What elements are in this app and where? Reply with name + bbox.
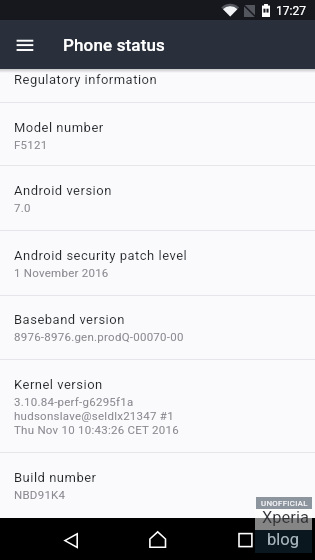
staticText: 7.0 — [14, 201, 31, 214]
staticText: 8976-8976.gen.prodQ-00070-00 — [14, 330, 184, 343]
staticText: Xperia — [262, 508, 309, 527]
other: Wi-Fi — [0, 0, 315, 20]
staticText: Model number — [14, 120, 104, 135]
staticText: Regulatory information — [14, 72, 158, 87]
staticText: 3.10.84-perf-g6295f1a — [14, 395, 134, 408]
button[interactable]: Android security patch level — [0, 231, 315, 295]
staticText: UNOFFICIAL — [261, 499, 308, 508]
staticText: Baseband version — [14, 312, 125, 327]
button[interactable]: Kernel version — [0, 360, 315, 453]
staticText: hudsonslave@seldlx21347 #1 — [14, 409, 174, 422]
button[interactable]: Regulatory information — [0, 55, 315, 103]
staticText: Thu Nov 10 10:43:26 CET 2016 — [14, 423, 179, 436]
button[interactable]: Android version — [0, 166, 315, 231]
button[interactable]: Back — [51, 519, 91, 559]
button[interactable]: Home — [138, 519, 178, 559]
other: No SIM card — [244, 5, 255, 17]
staticText: 1 November 2016 — [14, 266, 109, 279]
staticText: Build number — [14, 470, 97, 485]
staticText: Phone status — [63, 35, 165, 55]
staticText: NBD91K4 — [14, 488, 66, 501]
button[interactable]: Baseband version — [0, 295, 315, 360]
button[interactable]: Build number — [0, 453, 315, 517]
button[interactable]: Recent apps — [225, 519, 265, 559]
staticText: Android security patch level — [14, 248, 188, 263]
button[interactable]: Model number — [0, 103, 315, 166]
staticText: F5121 — [14, 138, 48, 151]
staticText: Kernel version — [14, 377, 103, 392]
button[interactable]: Open navigation menu — [5, 25, 45, 65]
staticText: 17:27 — [276, 4, 306, 18]
staticText: blog — [267, 530, 299, 549]
staticText: Android version — [14, 183, 112, 198]
